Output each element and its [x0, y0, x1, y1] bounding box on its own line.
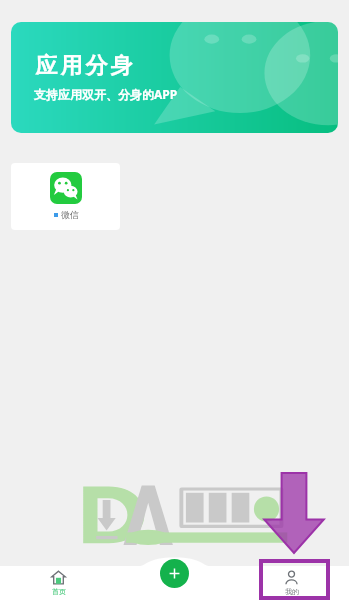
button[interactable]: 应用分身: [11, 22, 338, 133]
staticText: 微信: [61, 209, 79, 220]
button[interactable]: 我的: [233, 566, 349, 600]
button[interactable]: Add app: [160, 559, 189, 588]
staticText: 首页: [52, 587, 66, 596]
staticText: 支持应用双开、分身的APP: [34, 86, 178, 102]
staticText: 我的: [285, 587, 299, 596]
button[interactable]: 微信: [11, 163, 120, 230]
button[interactable]: Add: [117, 566, 233, 600]
staticText: 应用分身: [34, 52, 134, 80]
button[interactable]: 首页: [0, 566, 117, 600]
